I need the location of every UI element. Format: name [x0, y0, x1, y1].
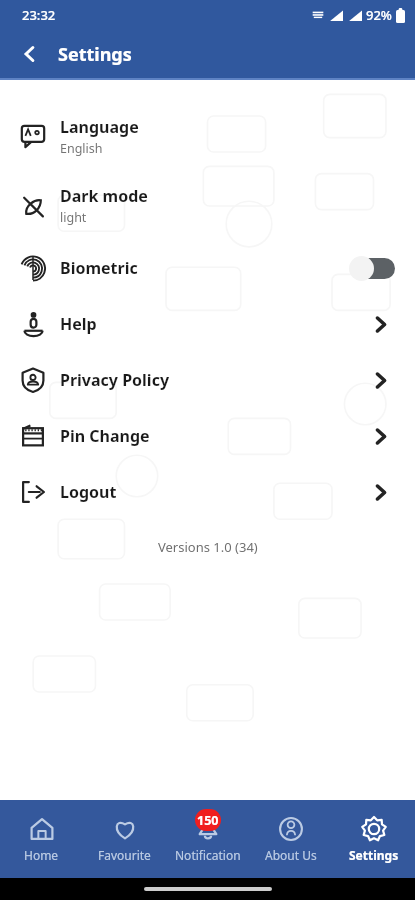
staticText: About Us: [265, 847, 317, 863]
staticText: 92%: [366, 6, 392, 24]
staticText: Logout: [60, 481, 117, 503]
staticText: 23:32: [22, 6, 56, 24]
button[interactable]: Help: [0, 296, 415, 352]
staticText: Dark mode: [60, 185, 148, 207]
staticText: Help: [60, 313, 97, 335]
staticText: Home: [24, 847, 59, 863]
button[interactable]: Settings: [332, 800, 415, 878]
button[interactable]: Language: [0, 102, 415, 171]
staticText: Language: [60, 116, 139, 138]
button[interactable]: Pin Change: [365, 421, 395, 451]
button[interactable]: Biometric: [0, 240, 415, 296]
staticText: Privacy Policy: [60, 369, 170, 391]
button[interactable]: Back: [12, 36, 48, 72]
button[interactable]: Biometric toggle: [349, 254, 397, 282]
staticText: Notification: [175, 847, 241, 863]
button[interactable]: Home: [0, 800, 83, 878]
staticText: English: [60, 140, 103, 157]
button[interactable]: Pin Change: [0, 408, 415, 464]
staticText: Settings: [349, 847, 399, 863]
button[interactable]: Favourite: [83, 800, 166, 878]
button[interactable]: Logout: [365, 477, 395, 507]
staticText: light: [60, 209, 87, 226]
staticText: Biometric: [60, 257, 138, 279]
button[interactable]: Help: [365, 309, 395, 339]
staticText: Settings: [58, 42, 132, 67]
staticText: Pin Change: [60, 425, 150, 447]
button[interactable]: Logout: [0, 464, 415, 520]
button[interactable]: Privacy Policy: [0, 352, 415, 408]
staticText: Versions 1.0 (34): [158, 538, 258, 556]
button[interactable]: Dark mode: [0, 171, 415, 240]
staticText: 150: [197, 812, 219, 829]
button[interactable]: 150: [166, 800, 249, 878]
button[interactable]: Privacy Policy: [365, 365, 395, 395]
button[interactable]: About Us: [249, 800, 332, 878]
staticText: Favourite: [98, 847, 151, 863]
